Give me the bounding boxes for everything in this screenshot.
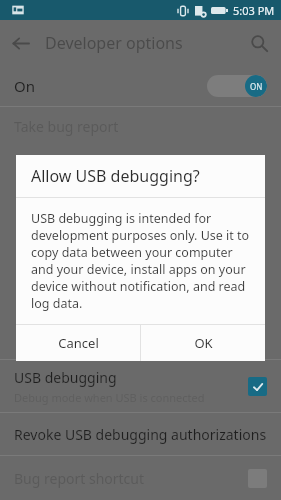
staticText: Cancel [58, 334, 99, 352]
staticText: Debug mode when USB is connected [14, 390, 205, 405]
staticText: OK [194, 334, 213, 352]
staticText: USB debugging [14, 368, 117, 387]
staticText: Take bug report [14, 117, 119, 136]
staticText: 5:03 PM [233, 3, 275, 18]
staticText: On [14, 76, 35, 96]
button[interactable]: Cancel [16, 325, 140, 361]
button[interactable]: On [0, 66, 281, 106]
staticText: Allow USB debugging? [31, 165, 200, 187]
staticText: Developer options [45, 32, 183, 54]
button[interactable]: Back [0, 23, 40, 63]
button[interactable]: Bug report shortcut [0, 456, 281, 500]
staticText: ON [250, 81, 263, 92]
button[interactable]: Back [0, 20, 281, 66]
staticText: Bug report shortcut [14, 469, 145, 488]
staticText: USB debugging is intended for developmen… [31, 210, 253, 312]
button[interactable]: Revoke USB debugging authorizations [0, 413, 281, 455]
button[interactable]: USB debugging [0, 360, 281, 412]
staticText: Revoke USB debugging authorizations [14, 425, 267, 444]
button[interactable]: OK [141, 325, 265, 361]
button[interactable]: Search [237, 21, 281, 65]
